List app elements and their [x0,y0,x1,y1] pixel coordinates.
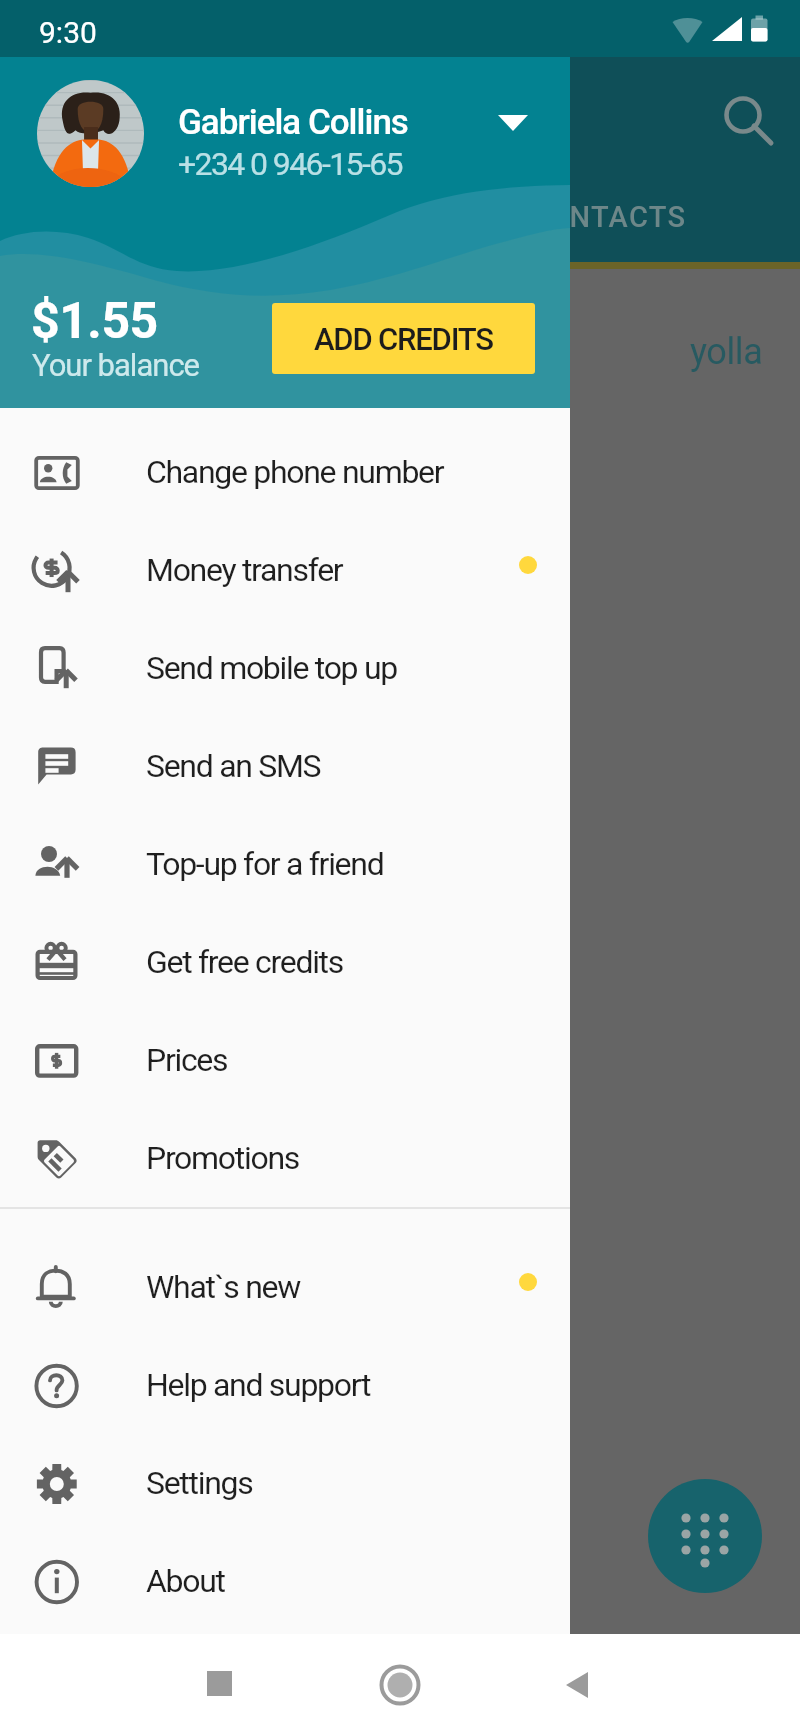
staticText: ADD CREDITS [314,321,493,357]
staticText: Money transfer [146,551,343,589]
button[interactable]: About [0,1517,570,1615]
staticText: Gabriela Collins [178,102,408,143]
button[interactable]: Help and support [0,1321,570,1419]
button[interactable]: Change phone number [0,408,570,506]
staticText: Top-up for a friend [146,845,384,883]
button[interactable]: Back [548,1655,608,1715]
button[interactable]: Dialpad [648,1479,762,1593]
staticText: 9:30 [39,15,97,50]
button[interactable]: Recents [189,1653,249,1713]
button[interactable]: Send an SMS [0,702,570,800]
staticText: What`s new [146,1268,300,1306]
button[interactable]: Expand account [480,88,546,154]
staticText: CONTACTS [528,200,687,234]
staticText: Send an SMS [146,747,321,785]
staticText: Help and support [146,1366,371,1404]
staticText: Settings [146,1464,253,1502]
staticText: About [146,1562,225,1600]
button[interactable]: Money transfer [0,506,570,604]
button[interactable]: Search [710,82,790,162]
staticText: Your balance [32,347,200,383]
staticText: Send mobile top up [146,649,397,687]
button[interactable]: Prices [0,996,570,1094]
button[interactable]: ADD CREDITS [272,303,535,374]
staticText: Promotions [146,1139,299,1177]
staticText: Change phone number [146,453,444,491]
staticText: Get free credits [146,943,343,981]
button[interactable]: Send mobile top up [0,604,570,702]
button[interactable]: Promotions [0,1094,570,1192]
button[interactable]: Home [370,1655,430,1715]
staticText: Prices [146,1041,228,1079]
staticText: yolla [690,331,763,373]
staticText: +234 0 946-15-65 [178,145,402,183]
button[interactable]: What`s new [0,1223,570,1321]
button[interactable]: Get free credits [0,898,570,996]
staticText: $1.55 [31,292,158,351]
button[interactable]: Settings [0,1419,570,1517]
button[interactable]: Profile photo [37,80,144,187]
button[interactable]: Top-up for a friend [0,800,570,898]
